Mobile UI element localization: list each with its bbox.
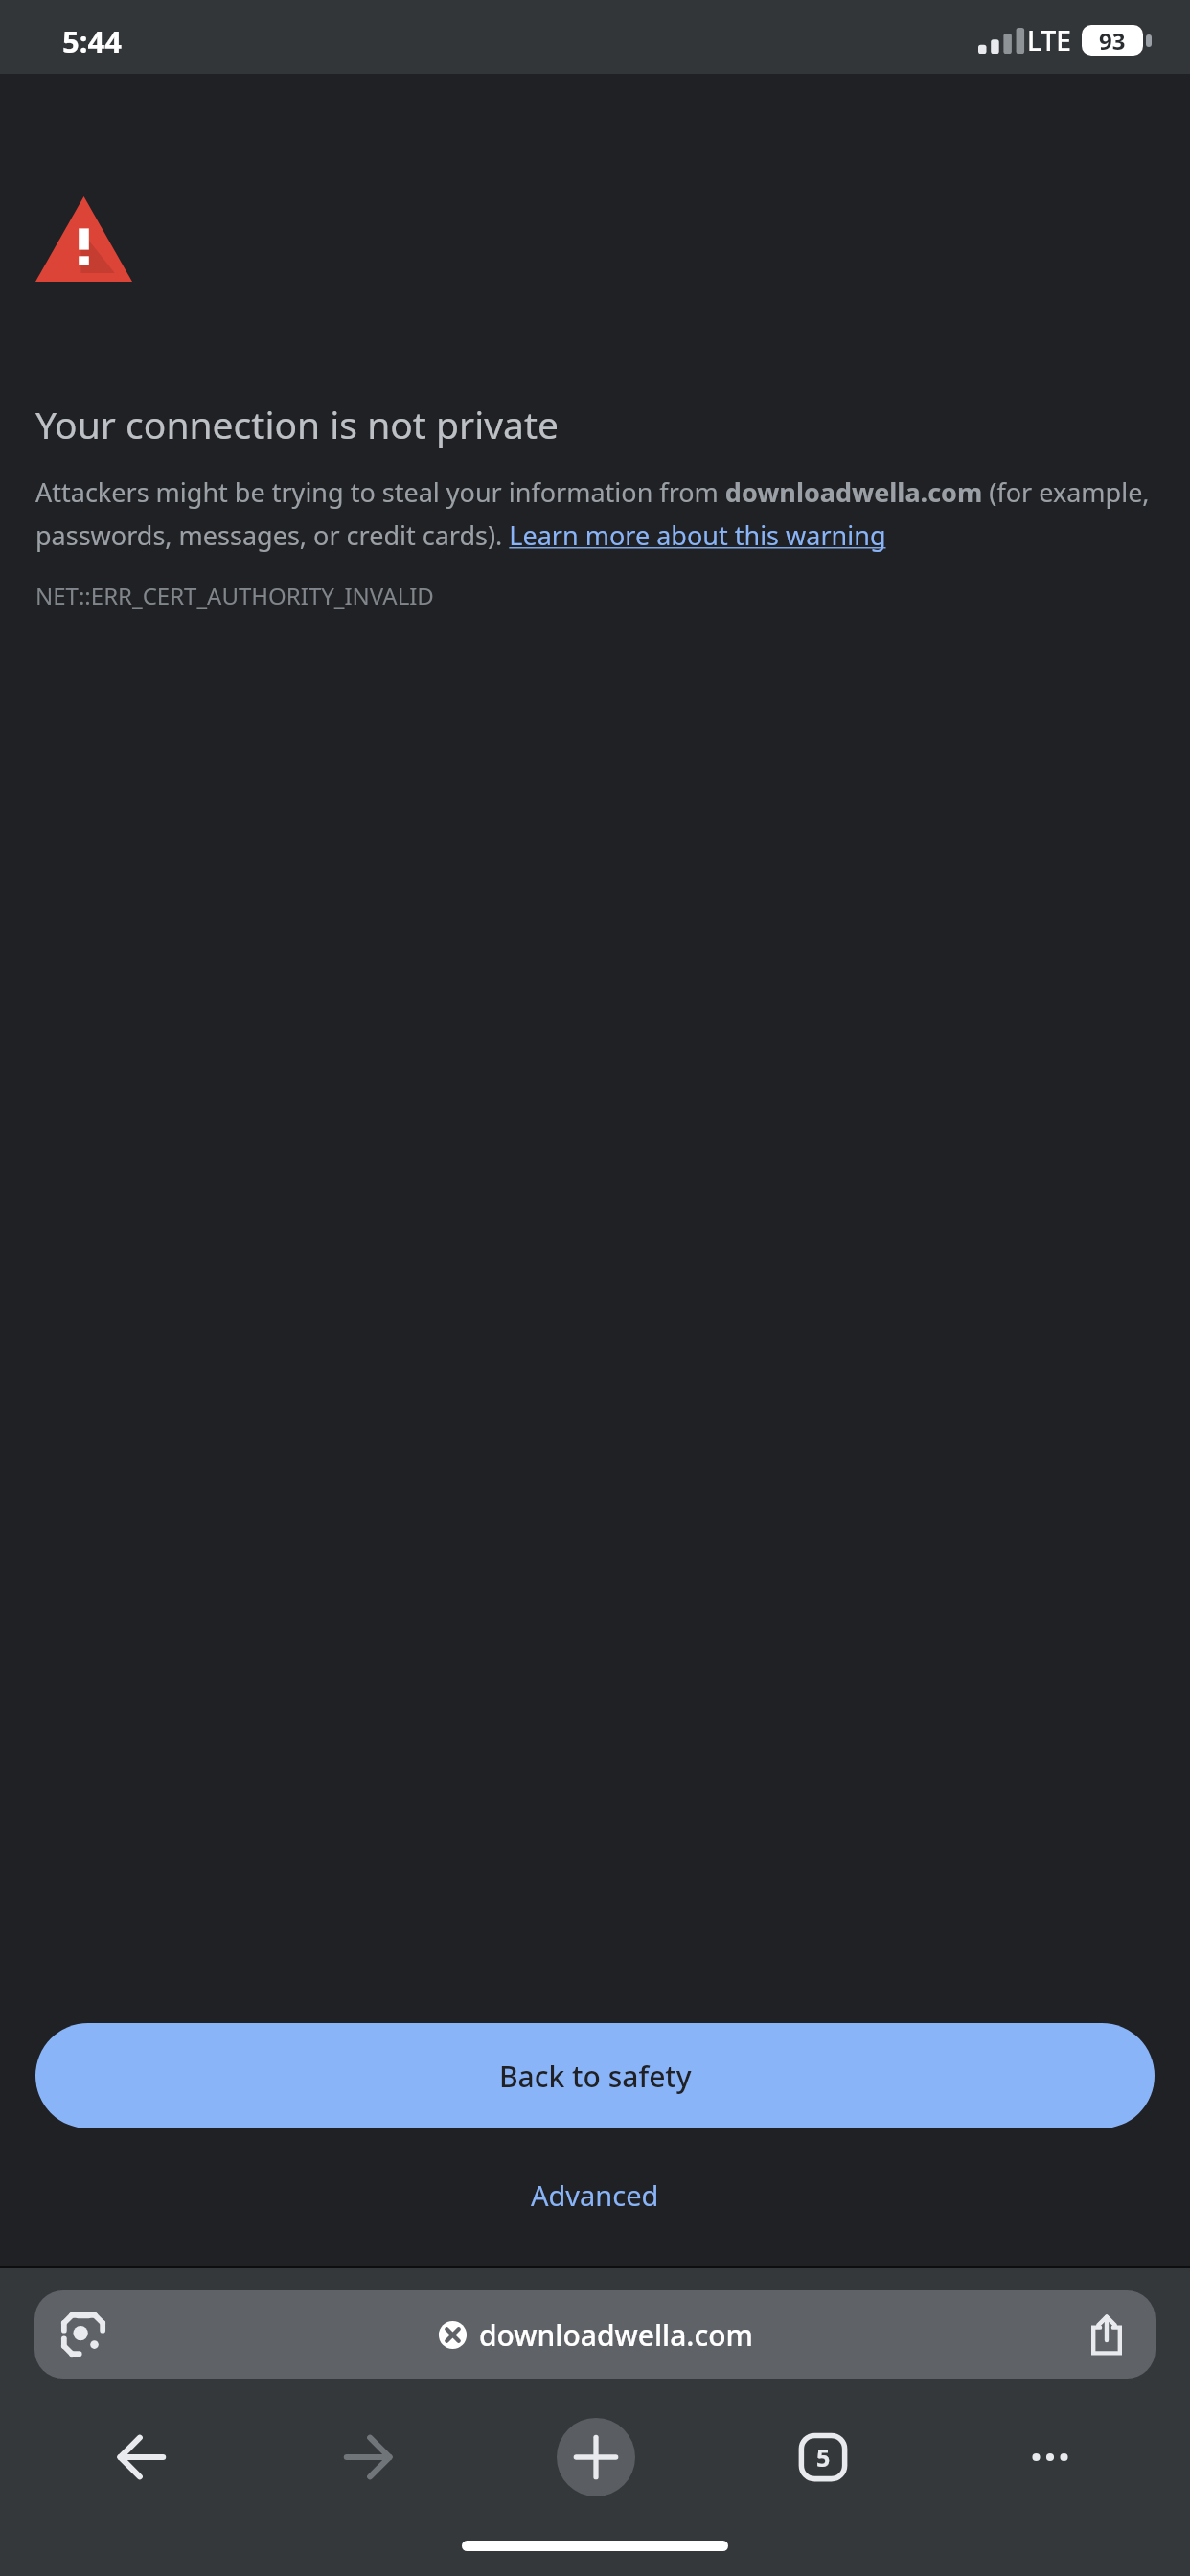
button[interactable]: Share <box>1077 2305 1136 2364</box>
button[interactable]: Search with Google Lens <box>34 2290 1156 2379</box>
button[interactable]: More options <box>936 2403 1163 2511</box>
staticText: 5 <box>816 2441 831 2473</box>
button[interactable]: Back to safety <box>35 2023 1155 2128</box>
button[interactable]: Advanced <box>510 2167 680 2223</box>
staticText: Advanced <box>531 2176 659 2214</box>
staticText: 93 <box>1099 25 1126 56</box>
button[interactable]: New tab <box>482 2403 709 2511</box>
button[interactable]: Search with Google Lens <box>54 2305 113 2364</box>
button[interactable]: Forward <box>255 2403 482 2511</box>
staticText: Back to safety <box>499 2057 692 2096</box>
staticText: 5:44 <box>62 21 122 61</box>
staticText: LTE <box>1027 22 1071 58</box>
button[interactable]: Tabs, 5 open <box>709 2403 936 2511</box>
staticText: Your connection is not private <box>35 399 560 449</box>
button[interactable]: Back <box>27 2403 255 2511</box>
button[interactable]: Attackers might be trying to steal your … <box>35 474 1155 553</box>
staticText: downloadwella.com <box>479 2315 753 2355</box>
staticText: NET::ERR_CERT_AUTHORITY_INVALID <box>35 580 434 611</box>
